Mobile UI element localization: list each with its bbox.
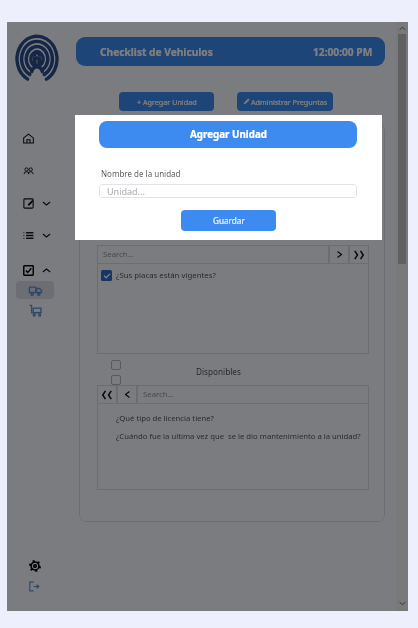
button[interactable]: Bajar <box>396 597 408 609</box>
button[interactable]: Search... <box>103 245 329 264</box>
button[interactable]: Listas <box>7 230 66 241</box>
staticText: 12:00:00 PM <box>313 45 373 59</box>
button[interactable]: Search... <box>143 385 369 404</box>
button[interactable]: mover adelante <box>329 245 349 264</box>
button[interactable]: Cerrar sesion <box>29 581 40 592</box>
button[interactable]: Editar <box>7 198 66 209</box>
staticText: Agregar Unidad <box>190 128 267 141</box>
staticText: + Agregar Unidad <box>137 97 197 107</box>
button[interactable]: ¿Sus placas están vigentes? <box>101 270 369 281</box>
button[interactable]: mover adelante <box>349 245 369 264</box>
button[interactable]: mover atras <box>97 385 117 404</box>
staticText: Search... <box>103 249 134 260</box>
button[interactable]: Agregar Unidad <box>99 121 357 148</box>
button[interactable]: + Agregar Unidad <box>119 92 214 111</box>
button[interactable]: ¿Cuándo fue la ultima vez que se le dio … <box>116 431 361 441</box>
button[interactable]: Checklist de Vehiculos <box>76 37 385 66</box>
button[interactable]: Checklist <box>7 265 66 276</box>
staticText: Guardar <box>213 215 245 226</box>
button[interactable]: mover atras <box>117 385 137 404</box>
button[interactable]: Administrar Preguntas <box>237 92 333 111</box>
button[interactable]: Unidad... <box>99 184 357 198</box>
staticText: ¿Qué tipo de licencia tiene? <box>116 413 214 423</box>
button[interactable]: Vehiculos <box>16 281 54 299</box>
button[interactable]: seleccionar <box>111 360 121 370</box>
button[interactable]: ¿Qué tipo de licencia tiene? <box>116 413 214 423</box>
button[interactable]: Configuracion <box>29 560 41 572</box>
staticText: Disponibles <box>196 366 241 377</box>
button[interactable]: seleccionar todo <box>111 375 121 385</box>
staticText: Search... <box>143 389 174 400</box>
button[interactable]: Carga <box>16 303 54 317</box>
staticText: Nombre de la unidad <box>101 168 181 179</box>
button[interactable]: Usuarios <box>23 166 34 177</box>
button[interactable]: Subir <box>396 22 408 34</box>
button[interactable]: Guardar <box>181 210 276 231</box>
staticText: ¿Sus placas están vigentes? <box>116 270 216 281</box>
staticText: Administrar Preguntas <box>251 97 328 107</box>
staticText: ¿Cuándo fue la ultima vez que se le dio … <box>116 431 361 441</box>
button[interactable]: Inicio <box>23 133 34 144</box>
staticText: Checklist de Vehiculos <box>100 45 213 59</box>
staticText: Unidad... <box>107 185 145 197</box>
